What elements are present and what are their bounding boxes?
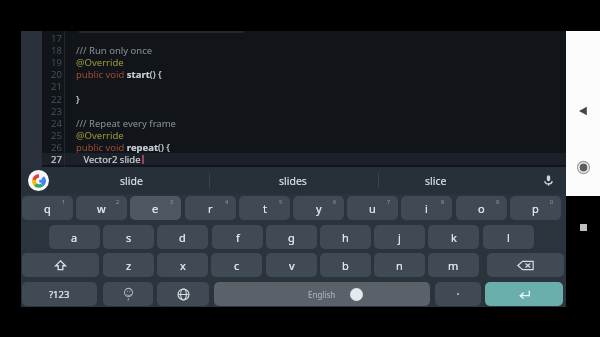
staticText: 25 [51, 129, 62, 142]
staticText: @Override [76, 129, 124, 142]
button[interactable]: z [103, 253, 154, 277]
staticText: j [398, 230, 401, 245]
button[interactable]: Emoji [103, 282, 153, 306]
staticText: } [76, 93, 80, 106]
staticText: 8 [441, 198, 445, 205]
button[interactable]: y [293, 196, 344, 220]
staticText: public void start() { [76, 68, 162, 81]
button[interactable]: Home [566, 150, 600, 184]
button[interactable]: k [428, 225, 479, 249]
staticText: p [532, 201, 539, 216]
button[interactable]: slides [209, 167, 377, 194]
button[interactable]: l [483, 225, 534, 249]
staticText: slides [279, 174, 307, 188]
button[interactable]: Shift [22, 253, 99, 277]
staticText: 17 [51, 32, 62, 45]
staticText: 3 [170, 198, 174, 205]
staticText: a [71, 230, 78, 245]
staticText: slice [425, 174, 447, 188]
staticText: 21 [51, 80, 62, 93]
button[interactable]: Recents [566, 205, 600, 245]
staticText: Vector2 slide [76, 153, 141, 166]
staticText: w [97, 201, 106, 216]
button[interactable]: e [130, 196, 181, 220]
staticText: 22 [51, 93, 62, 106]
staticText: 20 [51, 68, 62, 81]
staticText: 26 [51, 141, 62, 154]
button[interactable]: w [76, 196, 127, 220]
button[interactable]: slide [53, 167, 209, 194]
button[interactable]: English [214, 282, 430, 306]
staticText: g [288, 230, 295, 245]
button[interactable]: Google [28, 170, 49, 191]
staticText: d [179, 230, 186, 245]
staticText: 19 [51, 56, 62, 69]
button[interactable]: i [401, 196, 452, 220]
button[interactable]: o [456, 196, 507, 220]
staticText: u [369, 201, 376, 216]
staticText: n [396, 258, 403, 273]
staticText: i [425, 201, 428, 216]
staticText: 7 [387, 198, 391, 205]
staticText: z [126, 258, 132, 273]
staticText: y [316, 201, 322, 216]
button[interactable]: h [320, 225, 371, 249]
button[interactable]: ?123 [22, 282, 97, 306]
staticText: s [126, 230, 132, 245]
button[interactable]: Period [435, 282, 481, 306]
button[interactable]: Voice input [531, 167, 566, 194]
button[interactable]: a [49, 225, 100, 249]
staticText: r [208, 201, 213, 216]
staticText: 24 [51, 117, 62, 130]
button[interactable]: p [510, 196, 561, 220]
staticText: 23 [51, 105, 62, 118]
staticText: 5 [279, 198, 283, 205]
staticText: c [234, 258, 240, 273]
staticText: q [44, 201, 51, 216]
staticText: 2 [116, 198, 120, 205]
staticText: /// Repeat every frame [76, 117, 176, 130]
staticText: 6 [333, 198, 337, 205]
staticText: English [308, 289, 336, 300]
button[interactable]: slice [357, 167, 515, 194]
staticText: h [342, 230, 349, 245]
staticText: 0 [550, 198, 554, 205]
button[interactable]: Change language [157, 282, 209, 306]
staticText: o [478, 201, 485, 216]
button[interactable]: m [428, 253, 479, 277]
button[interactable]: c [211, 253, 262, 277]
staticText: f [236, 230, 240, 245]
staticText: @Override [76, 56, 124, 69]
staticText: x [180, 258, 186, 273]
staticText: 1 [62, 198, 66, 205]
staticText: 4 [225, 198, 229, 205]
staticText: m [448, 258, 459, 273]
button[interactable]: t [239, 196, 290, 220]
button[interactable]: n [374, 253, 425, 277]
button[interactable]: g [266, 225, 317, 249]
button[interactable]: q [22, 196, 73, 220]
button[interactable]: Enter [485, 282, 563, 306]
staticText: 18 [51, 44, 62, 57]
staticText: v [289, 258, 295, 273]
button[interactable]: s [103, 225, 154, 249]
staticText: slide [120, 174, 143, 188]
button[interactable]: Backspace [487, 253, 564, 277]
button[interactable]: u [347, 196, 398, 220]
staticText: e [152, 201, 159, 216]
staticText: b [342, 258, 349, 273]
button[interactable]: Back [566, 94, 600, 128]
button[interactable]: x [157, 253, 208, 277]
staticText: /// Run only once [76, 44, 153, 57]
button[interactable]: d [157, 225, 208, 249]
button[interactable]: b [320, 253, 371, 277]
staticText: ?123 [49, 288, 70, 301]
button[interactable]: j [374, 225, 425, 249]
staticText: 27 [51, 153, 62, 166]
staticText: 9 [496, 198, 500, 205]
button[interactable]: f [212, 225, 263, 249]
staticText: k [451, 230, 457, 245]
button[interactable]: v [266, 253, 317, 277]
button[interactable]: r [185, 196, 236, 220]
staticText: l [507, 230, 510, 245]
